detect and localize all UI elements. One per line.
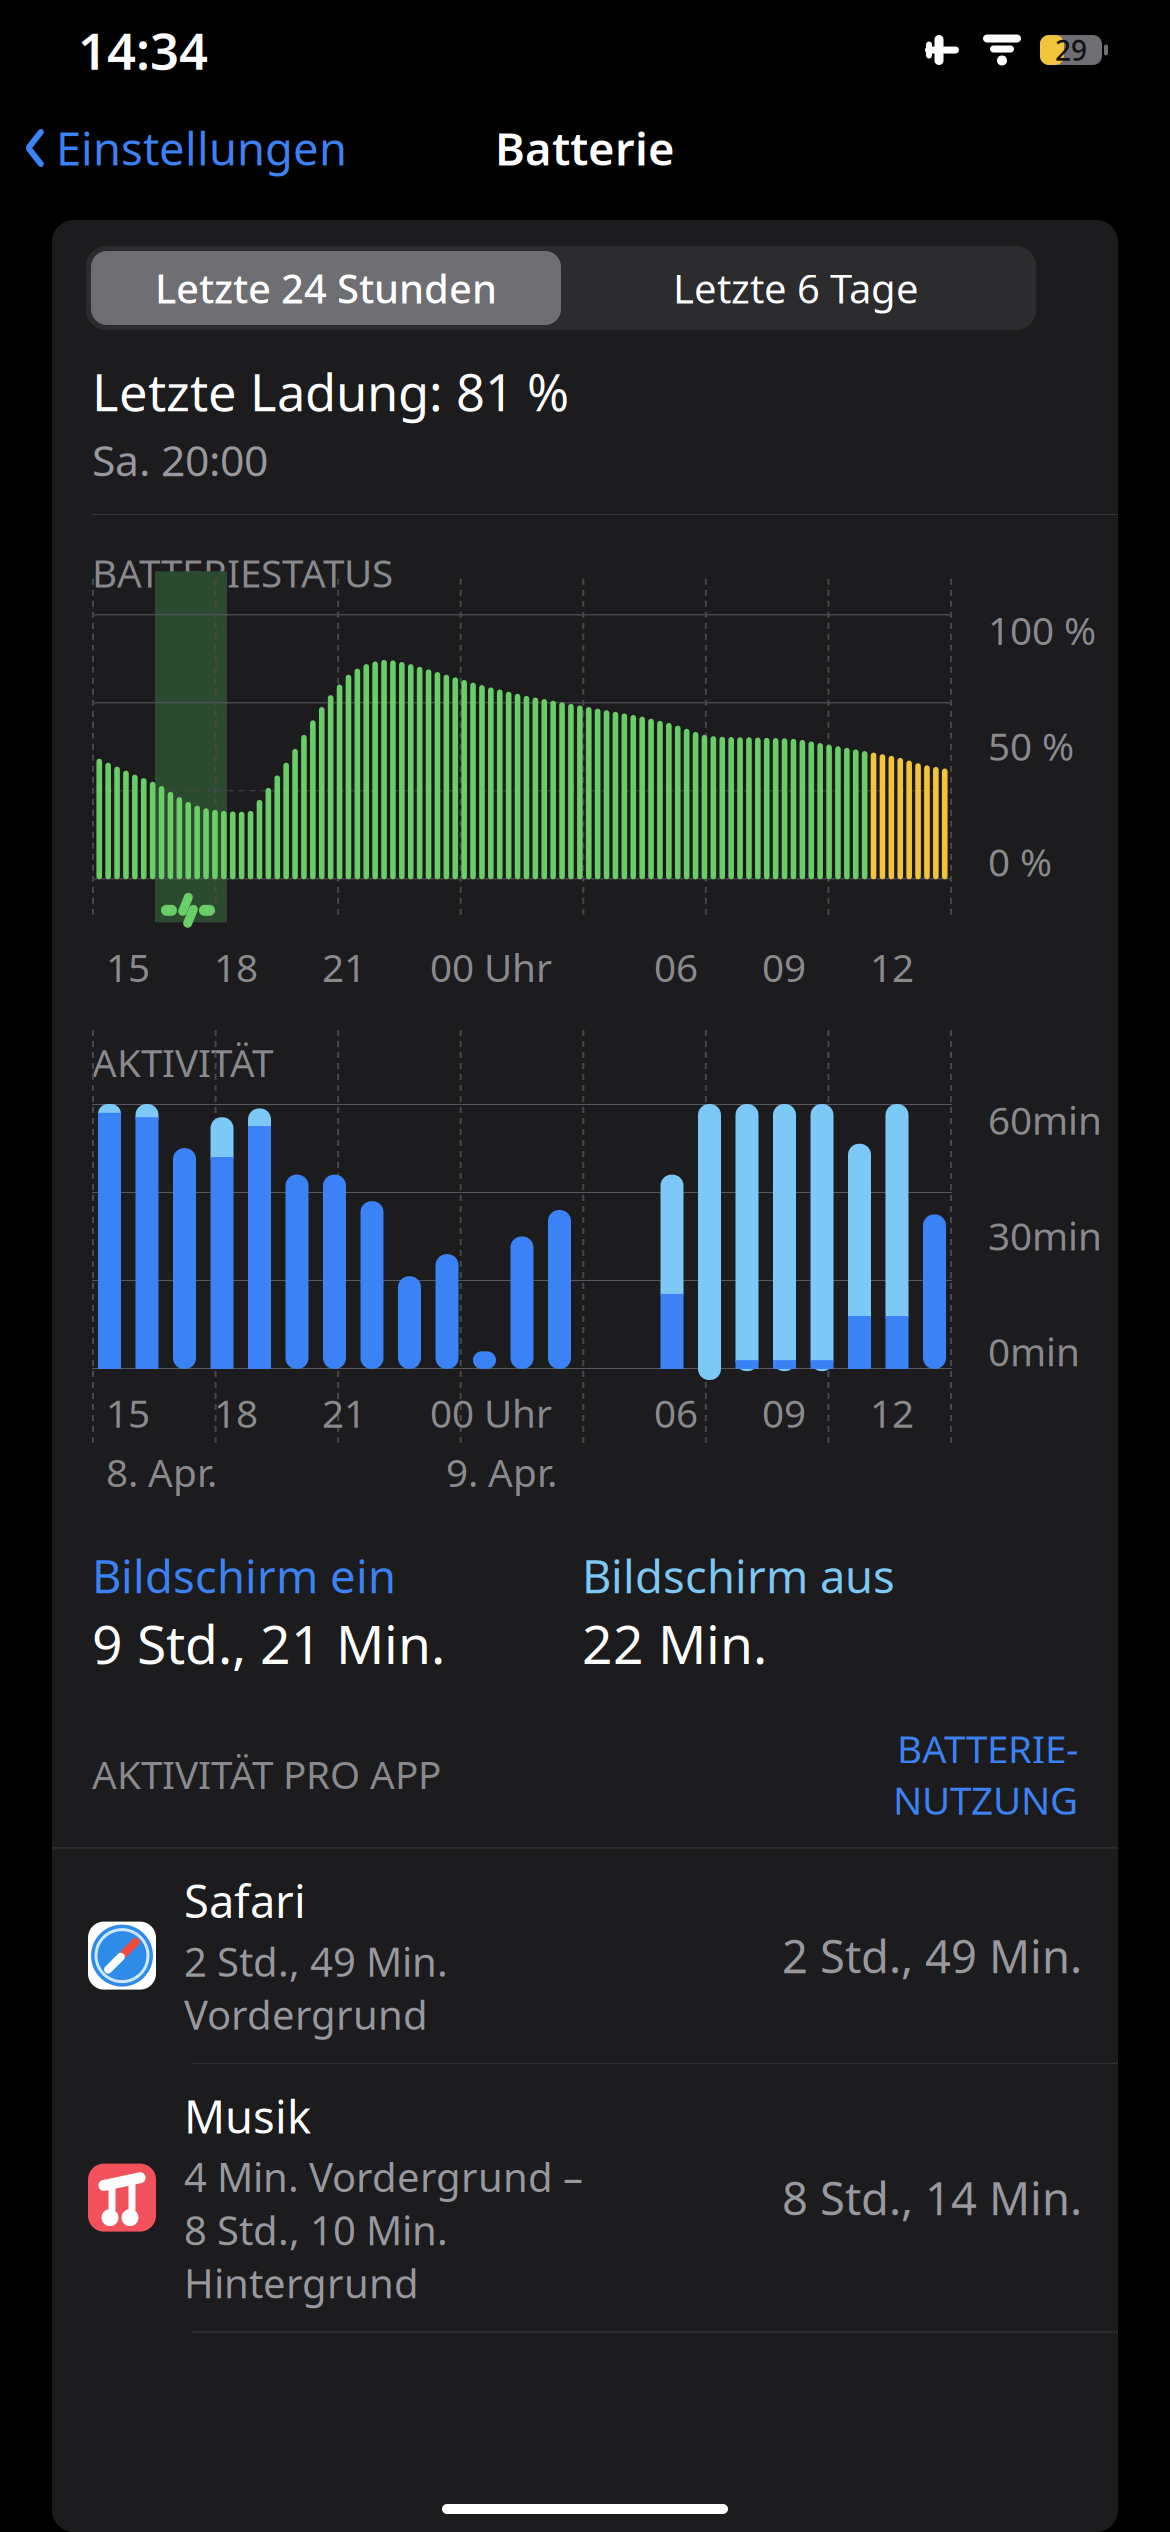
staticText: AKTIVITÄT PRO APP (92, 1748, 441, 1800)
staticText: 14:34 (78, 16, 208, 84)
button[interactable]: Letzte 6 Tage (561, 251, 1031, 325)
staticText: Letzte 6 Tage (673, 261, 919, 314)
staticText: 0min (988, 1326, 1080, 1377)
staticText: 06 (654, 941, 698, 993)
staticText: 12 (870, 941, 914, 993)
staticText: 06 (654, 1387, 698, 1438)
staticText: 12 (870, 1387, 914, 1438)
button[interactable]: Musik (52, 2064, 1118, 2331)
staticText: 100 % (988, 604, 1096, 656)
staticText: Letzte Ladung: 81 % (92, 358, 569, 425)
staticText: 4 Min. Vordergrund – 8 Std., 10 Min. Hin… (184, 2150, 583, 2309)
staticText: 21 (322, 1387, 366, 1438)
button[interactable]: Einstellungen (0, 108, 347, 188)
staticText: Sa. 20:00 (92, 431, 268, 488)
staticText: 0 % (988, 836, 1052, 887)
staticText: 60min (988, 1094, 1102, 1145)
staticText: 09 (762, 1387, 806, 1438)
staticText: Einstellungen (56, 118, 347, 178)
staticText: 18 (214, 941, 258, 993)
staticText: 29 (1055, 31, 1087, 69)
staticText: Batterie (495, 118, 675, 178)
staticText: BATTERIE- (897, 1723, 1078, 1774)
staticText: 22 Min. (582, 1608, 767, 1679)
staticText: 18 (214, 1387, 258, 1438)
staticText: 9 Std., 21 Min. (92, 1608, 445, 1679)
staticText: 50 % (988, 720, 1074, 771)
staticText: 9. Apr. (446, 1446, 557, 1498)
staticText: Musik (184, 2086, 311, 2146)
staticText: NUTZUNG (893, 1774, 1078, 1825)
staticText: 8 Std., 14 Min. (782, 2167, 1082, 2228)
button[interactable]: BATTERIE- (893, 1719, 1078, 1829)
staticText: 21 (322, 941, 366, 993)
staticText: 00 Uhr (430, 1387, 552, 1438)
staticText: 00 Uhr (430, 941, 552, 993)
staticText: AKTIVITÄT (92, 1037, 273, 1088)
staticText: 2 Std., 49 Min. Vordergrund (184, 1935, 448, 2041)
staticText: 09 (762, 941, 806, 993)
staticText: 8. Apr. (106, 1446, 217, 1498)
button[interactable]: Safari (52, 1848, 1118, 2063)
button[interactable]: Letzte 24 Stunden (91, 251, 561, 325)
staticText: Bildschirm ein (92, 1546, 396, 1606)
staticText: 15 (106, 1387, 150, 1438)
staticText: Safari (184, 1870, 306, 1931)
staticText: Letzte 24 Stunden (155, 261, 497, 314)
staticText: 15 (106, 941, 150, 993)
staticText: Bildschirm aus (582, 1546, 895, 1606)
staticText: 2 Std., 49 Min. (782, 1925, 1082, 1986)
staticText: 30min (988, 1210, 1102, 1261)
staticText: BATTERIESTATUS (92, 547, 393, 598)
